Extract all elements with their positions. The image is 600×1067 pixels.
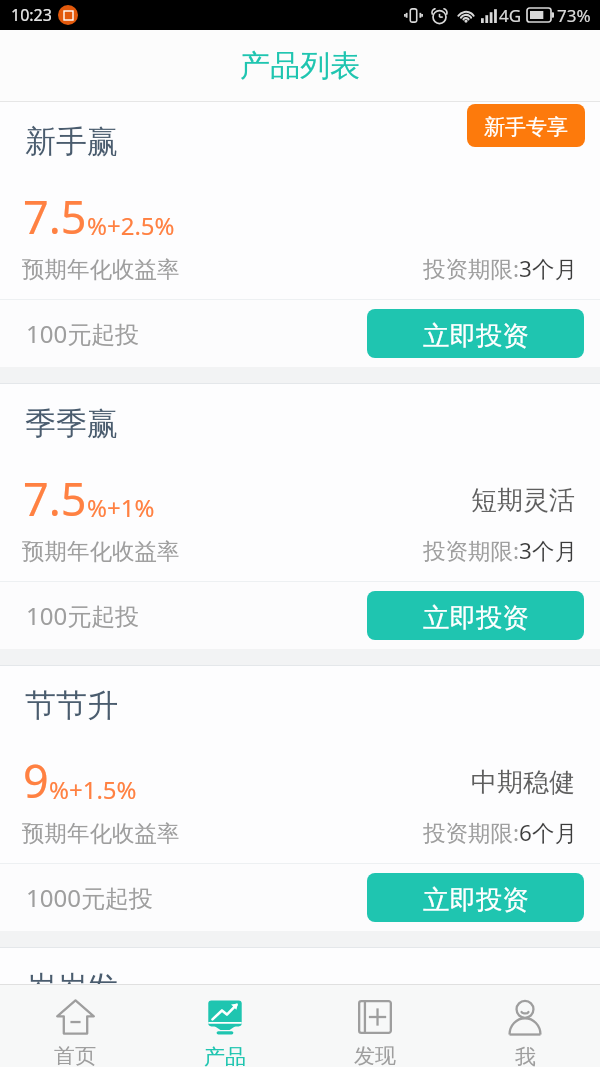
staticText: 立即投资 <box>423 883 529 916</box>
staticText: 立即投资 <box>423 601 529 634</box>
staticText: 季季赢 <box>25 404 118 443</box>
staticText: 新手专享 <box>484 114 568 140</box>
button[interactable]: 立即投资 <box>367 591 584 640</box>
staticText: %+2.5% <box>87 209 175 242</box>
staticText: %+1% <box>87 491 155 524</box>
staticText: 节节升 <box>25 686 118 725</box>
staticText: 首页 <box>54 1043 96 1067</box>
button[interactable]: 节节升 <box>0 666 600 931</box>
staticText: %+1.5% <box>49 773 137 806</box>
staticText: 9 <box>23 750 49 811</box>
staticText: 短期灵活 <box>471 484 575 517</box>
button[interactable]: 岁岁发 <box>0 948 600 984</box>
staticText: 73% <box>557 4 591 27</box>
staticText: 发现 <box>354 1043 396 1067</box>
staticText: 投资期限:3个月 <box>423 253 577 284</box>
staticText: 预期年化收益率 <box>22 537 180 565</box>
staticText: 100元起投 <box>26 599 140 632</box>
staticText: 投资期限:3个月 <box>423 535 577 566</box>
button[interactable]: 我 <box>450 984 600 1067</box>
button[interactable]: 首页 <box>0 984 150 1067</box>
staticText: 投资期限:6个月 <box>423 817 577 848</box>
staticText: 产品列表 <box>240 47 360 85</box>
staticText: 1000元起投 <box>26 881 153 914</box>
staticText: 立即投资 <box>423 319 529 352</box>
button[interactable]: 新手赢 <box>0 102 600 367</box>
staticText: 7.5 <box>23 468 87 529</box>
staticText: 100元起投 <box>26 317 140 350</box>
staticText: 预期年化收益率 <box>22 255 180 283</box>
staticText: 4G <box>499 4 522 27</box>
staticText: 中期稳健 <box>471 766 575 799</box>
staticText: 新手赢 <box>25 122 118 161</box>
staticText: 预期年化收益率 <box>22 819 180 847</box>
button[interactable]: 立即投资 <box>367 873 584 922</box>
staticText: 产品 <box>204 1044 246 1067</box>
button[interactable]: 产品 <box>150 984 300 1067</box>
button[interactable]: 发现 <box>300 984 450 1067</box>
staticText: 7.5 <box>23 186 87 247</box>
staticText: 岁岁发 <box>25 968 118 984</box>
button[interactable]: 新手专享 <box>467 104 585 147</box>
staticText: 我 <box>515 1044 536 1067</box>
button[interactable]: 立即投资 <box>367 309 584 358</box>
button[interactable]: 季季赢 <box>0 384 600 649</box>
staticText: 10:23 <box>11 4 52 26</box>
